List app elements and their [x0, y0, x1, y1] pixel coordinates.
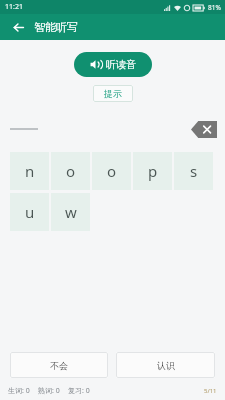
staticText: 熟词: 0 — [38, 386, 60, 396]
staticText: p — [148, 161, 158, 181]
staticText: n — [25, 161, 35, 181]
button[interactable]: 认识 — [116, 352, 215, 378]
staticText: w — [65, 202, 77, 222]
staticText: 81% — [208, 3, 221, 12]
button[interactable]: u — [10, 193, 49, 231]
staticText: u — [25, 202, 35, 222]
staticText: 11:21 — [5, 2, 23, 12]
button[interactable]: n — [10, 152, 49, 190]
button[interactable]: o — [51, 152, 90, 190]
staticText: 复习: 0 — [68, 386, 90, 396]
staticText: o — [66, 161, 76, 181]
staticText: 听读音 — [106, 58, 136, 71]
button[interactable]: p — [133, 152, 172, 190]
button[interactable]: 提示 — [93, 85, 133, 102]
staticText: s — [190, 161, 198, 181]
button[interactable]: Back — [8, 17, 28, 37]
button[interactable]: w — [51, 193, 90, 231]
button[interactable]: s — [174, 152, 213, 190]
staticText: 不会 — [50, 360, 68, 371]
button[interactable]: Backspace — [191, 121, 217, 138]
button[interactable]: 不会 — [10, 352, 108, 378]
staticText: 认识 — [157, 360, 175, 371]
staticText: 5/11 — [204, 387, 217, 395]
button[interactable]: o — [92, 152, 131, 190]
staticText: o — [107, 161, 117, 181]
button[interactable]: 听读音 — [74, 52, 152, 77]
staticText: 智能听写 — [34, 20, 78, 34]
staticText: 生词: 0 — [8, 386, 30, 396]
staticText: 提示 — [104, 88, 122, 99]
